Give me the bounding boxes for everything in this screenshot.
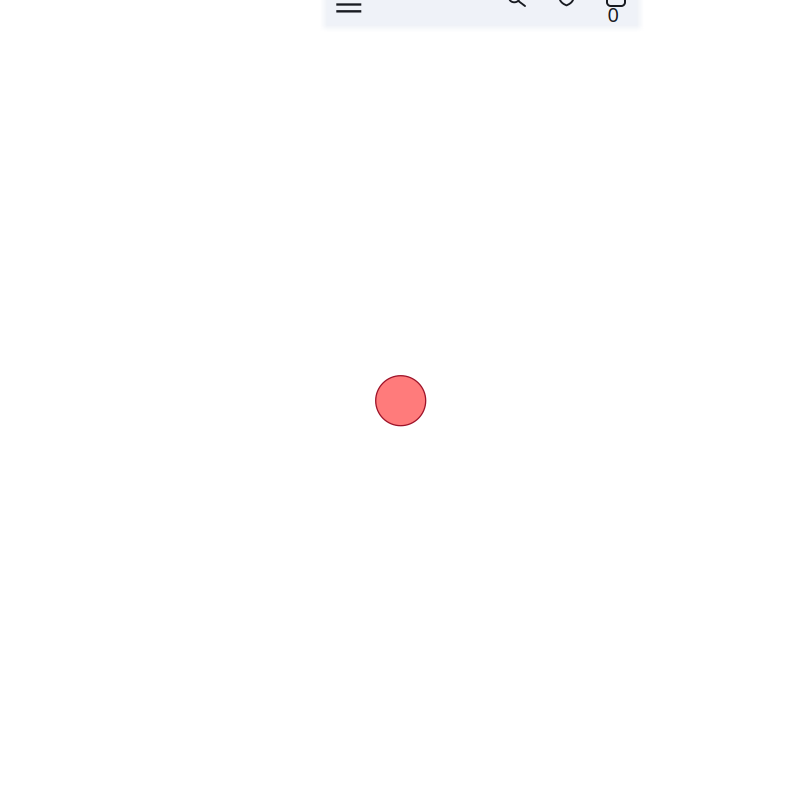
button[interactable]: Search <box>492 0 541 27</box>
button[interactable]: Wishlist <box>541 0 590 27</box>
staticText: 0 <box>607 1 618 28</box>
button[interactable]: Menu <box>321 0 377 27</box>
button[interactable]: Cart, 0 items <box>590 0 640 27</box>
